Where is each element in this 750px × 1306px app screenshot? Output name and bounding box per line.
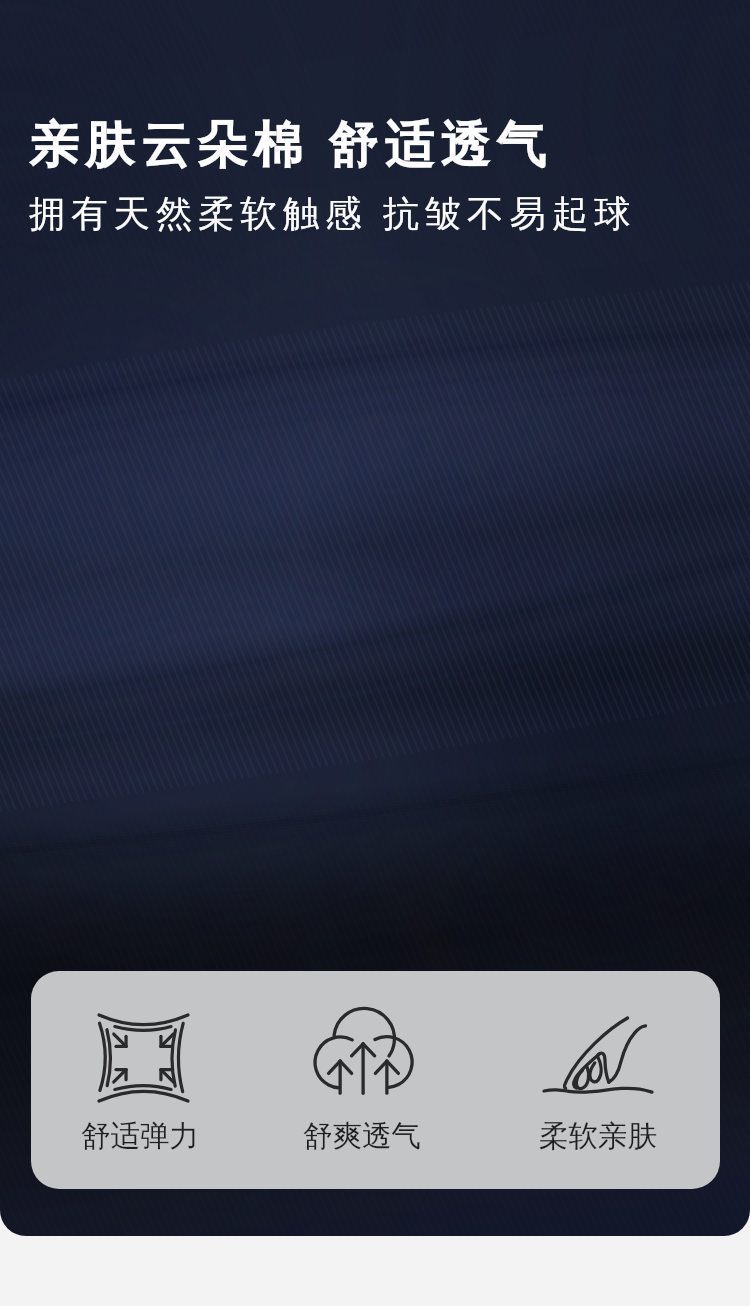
staticText: 舒适弹力 [81,1118,199,1155]
button[interactable]: 舒适弹力 [99,1015,188,1101]
button[interactable]: 舒爽透气 [315,1008,412,1094]
staticText: 拥有天然柔软触感 抗皱不易起球 [29,187,637,237]
staticText: 舒爽透气 [303,1118,421,1155]
button[interactable]: 舒适弹力 [45,1118,235,1155]
staticText: 亲肤云朵棉 舒适透气 [29,109,553,177]
button[interactable]: 柔软亲肤 [544,1017,652,1091]
button[interactable]: 舒爽透气 [267,1118,457,1155]
staticText: 柔软亲肤 [539,1118,657,1155]
button[interactable]: 柔软亲肤 [503,1118,693,1155]
